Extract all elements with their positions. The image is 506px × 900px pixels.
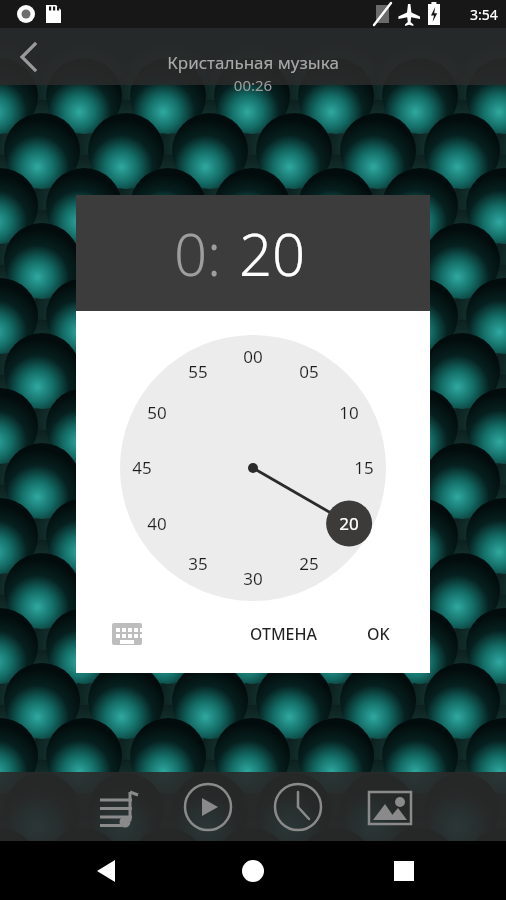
staticText: 40 [147, 512, 167, 535]
button[interactable]: Timer [271, 780, 325, 834]
button[interactable]: Keyboard input [104, 611, 150, 657]
staticText: 0: [174, 214, 222, 293]
button[interactable]: Gallery [359, 780, 413, 834]
staticText: 55 [188, 360, 208, 383]
staticText: 10 [339, 401, 359, 424]
staticText: 15 [354, 456, 374, 479]
staticText: 30 [243, 567, 263, 590]
staticText: 20 [339, 512, 359, 535]
staticText: 20 [239, 214, 306, 293]
button[interactable]: Back [82, 847, 130, 895]
staticText: Кристальная музыка [0, 51, 506, 74]
staticText: 45 [132, 456, 152, 479]
staticText: 00:26 [0, 75, 506, 95]
button[interactable]: Recents [380, 847, 428, 895]
button[interactable]: Playlist [90, 780, 144, 834]
staticText: 3:54 [470, 5, 498, 24]
staticText: 05 [299, 360, 319, 383]
staticText: 00 [243, 345, 263, 368]
button[interactable]: 0: [220, 214, 287, 293]
button[interactable]: Back [0, 29, 56, 85]
button[interactable]: ОТМЕНА [240, 613, 328, 655]
staticText: 25 [299, 552, 319, 575]
button[interactable]: Play [181, 780, 235, 834]
staticText: 50 [147, 401, 167, 424]
button[interactable]: OK [357, 613, 400, 655]
button[interactable]: Home [229, 847, 277, 895]
staticText: OK [367, 623, 390, 645]
staticText: ОТМЕНА [250, 623, 318, 645]
staticText: 35 [188, 552, 208, 575]
